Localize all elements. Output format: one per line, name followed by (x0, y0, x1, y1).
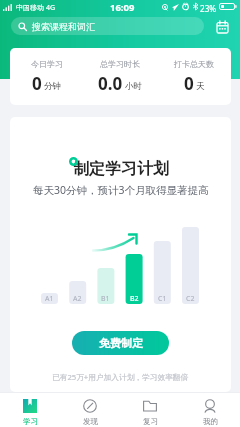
button[interactable]: 我的 (180, 393, 240, 427)
staticText: 23% (200, 3, 217, 14)
button[interactable]: 学习 (0, 393, 60, 427)
staticText: 学习 (23, 417, 38, 426)
button[interactable]: 免费制定 (72, 331, 169, 355)
button[interactable]: 复习 (120, 393, 180, 427)
staticText: 发现 (83, 417, 98, 426)
staticText: 中国移动 (16, 3, 44, 12)
staticText: 天 (196, 81, 205, 92)
staticText: B2 (130, 294, 139, 304)
staticText: 分钟 (44, 81, 61, 92)
staticText: 免费制定 (99, 336, 143, 350)
staticText: 今日学习 (31, 59, 63, 69)
staticText: 16:09 (110, 1, 135, 14)
staticText: 0.0 (98, 72, 123, 95)
staticText: B1 (101, 294, 110, 304)
staticText: A1 (45, 294, 54, 304)
button[interactable]: 搜索课程和词汇 (11, 17, 204, 35)
staticText: 我的 (203, 417, 218, 426)
staticText: 制定学习计划 (73, 159, 169, 179)
staticText: 4G (46, 3, 56, 13)
button[interactable]: 发现 (60, 393, 120, 427)
staticText: 已有25万+用户加入计划，学习效率翻倍 (52, 372, 189, 383)
staticText: 小时 (125, 81, 142, 92)
staticText: 0 (32, 72, 42, 95)
staticText: C2 (186, 294, 195, 304)
button[interactable]: Calendar (212, 16, 233, 37)
staticText: A2 (73, 294, 82, 304)
staticText: 总学习时长 (100, 59, 140, 69)
staticText: 搜索课程和词汇 (32, 21, 95, 32)
staticText: 0 (184, 72, 194, 95)
staticText: C1 (158, 294, 167, 304)
staticText: 每天30分钟，预计3个月取得显著提高 (33, 183, 209, 197)
staticText: 打卡总天数 (174, 59, 214, 69)
staticText: 复习 (143, 417, 158, 426)
